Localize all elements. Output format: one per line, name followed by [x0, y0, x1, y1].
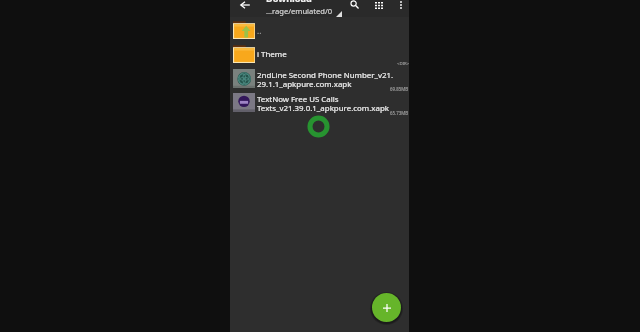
staticText: …rage/emulated/0	[266, 6, 333, 16]
staticText: Texts_v21.39.0.1_apkpure.com.xapk	[257, 103, 389, 114]
staticText: i Theme	[257, 49, 287, 60]
button[interactable]: More options	[393, 0, 409, 13]
staticText: <DIR>	[397, 60, 410, 66]
staticText: ..	[257, 25, 262, 36]
button[interactable]: i Theme	[230, 42, 409, 66]
staticText: 65.73MB	[390, 110, 409, 116]
button[interactable]: Back	[236, 0, 253, 13]
button[interactable]: Add	[372, 293, 401, 322]
button[interactable]: TextNow Free US Calls	[230, 90, 409, 114]
staticText: Download	[266, 0, 312, 5]
staticText: TextNow Free US Calls	[257, 94, 339, 105]
staticText: 29.1.1_apkpure.com.xapk	[257, 79, 352, 90]
button[interactable]: ..	[230, 18, 409, 42]
button[interactable]: Grid view	[371, 0, 387, 13]
staticText: 2ndLine Second Phone Number_v21.	[257, 70, 394, 81]
button[interactable]: 2ndLine Second Phone Number_v21.	[230, 66, 409, 90]
button[interactable]: Search	[346, 0, 362, 12]
staticText: 69.85MB	[390, 86, 409, 92]
